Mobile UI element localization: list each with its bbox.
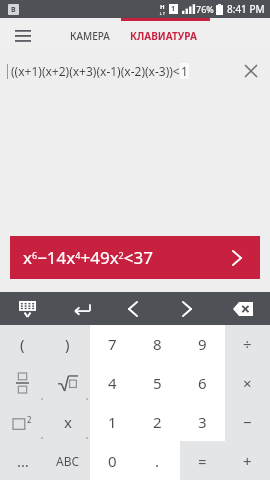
button[interactable]: Clear <box>238 58 264 84</box>
staticText: 1 <box>108 412 117 432</box>
staticText: − <box>243 412 252 432</box>
staticText: x <box>64 412 72 432</box>
button[interactable]: 8 <box>135 325 180 363</box>
staticText: КАМЕРА <box>70 29 110 43</box>
button[interactable]: 9 <box>180 325 225 363</box>
staticText: ↓↑ <box>159 11 166 16</box>
button[interactable]: Menu <box>8 21 38 51</box>
other: Open solution <box>226 247 248 269</box>
button[interactable]: = <box>180 441 225 480</box>
button[interactable]: + <box>225 441 270 480</box>
button[interactable]: ÷ <box>225 325 270 363</box>
staticText: КЛАВИАТУРА <box>130 29 197 43</box>
button[interactable] <box>0 363 45 402</box>
staticText: 1 <box>181 63 188 79</box>
staticText: 6 <box>198 373 207 393</box>
staticText: 8:41 PM <box>227 2 265 16</box>
button[interactable]: Backspace <box>226 292 260 325</box>
button[interactable]: Move cursor left <box>118 294 148 324</box>
staticText: x6−14x4+49x2<37 <box>23 246 153 269</box>
staticText: ( <box>20 334 25 354</box>
button[interactable]: 7 <box>90 325 135 363</box>
button[interactable]: ) <box>45 325 90 363</box>
staticText: ABC <box>56 453 80 469</box>
staticText: 7 <box>108 334 117 354</box>
button[interactable]: 5 <box>135 363 180 402</box>
button[interactable]: . <box>135 441 180 480</box>
staticText: B <box>11 5 16 15</box>
button[interactable]: КАМЕРА <box>64 21 116 51</box>
staticText: × <box>243 373 252 393</box>
staticText: ) <box>65 334 70 354</box>
staticText: 5 <box>153 373 162 393</box>
staticText: 9 <box>198 334 207 354</box>
button[interactable]: − <box>225 402 270 441</box>
button[interactable]: Enter <box>66 294 96 324</box>
button[interactable]: x <box>45 402 90 441</box>
button[interactable]: Hide keyboard <box>12 294 42 324</box>
staticText: 0 <box>108 451 117 471</box>
button[interactable]: 2 <box>0 402 45 441</box>
staticText: 2 <box>27 414 32 425</box>
staticText: + <box>243 451 252 471</box>
staticText: 4 <box>108 373 117 393</box>
staticText: 76% <box>196 3 214 15</box>
button[interactable]: 2 <box>135 402 180 441</box>
button[interactable]: Move cursor right <box>172 294 202 324</box>
staticText: ((x+1)(x+2)(x+3)(x-1)(x-2)(x-3))< <box>11 63 180 79</box>
staticText: H <box>160 3 165 11</box>
staticText: 3 <box>198 412 207 432</box>
button[interactable]: × <box>225 363 270 402</box>
button[interactable]: ( <box>0 325 45 363</box>
button[interactable]: 0 <box>90 441 135 480</box>
button[interactable]: x6−14x4+49x2<37 <box>10 236 260 279</box>
staticText: … <box>17 451 29 471</box>
button[interactable]: 6 <box>180 363 225 402</box>
button[interactable]: ABC <box>45 441 90 480</box>
staticText: ÷ <box>243 334 252 354</box>
button[interactable]: 1 <box>90 402 135 441</box>
staticText: . <box>155 451 160 471</box>
button[interactable] <box>45 363 90 402</box>
staticText: = <box>198 451 207 471</box>
button[interactable]: 3 <box>180 402 225 441</box>
staticText: 8 <box>153 334 162 354</box>
button[interactable]: КЛАВИАТУРА <box>124 21 203 51</box>
staticText: 1 <box>171 4 176 14</box>
button[interactable]: … <box>0 441 45 480</box>
staticText: 2 <box>153 412 162 432</box>
button[interactable]: 4 <box>90 363 135 402</box>
